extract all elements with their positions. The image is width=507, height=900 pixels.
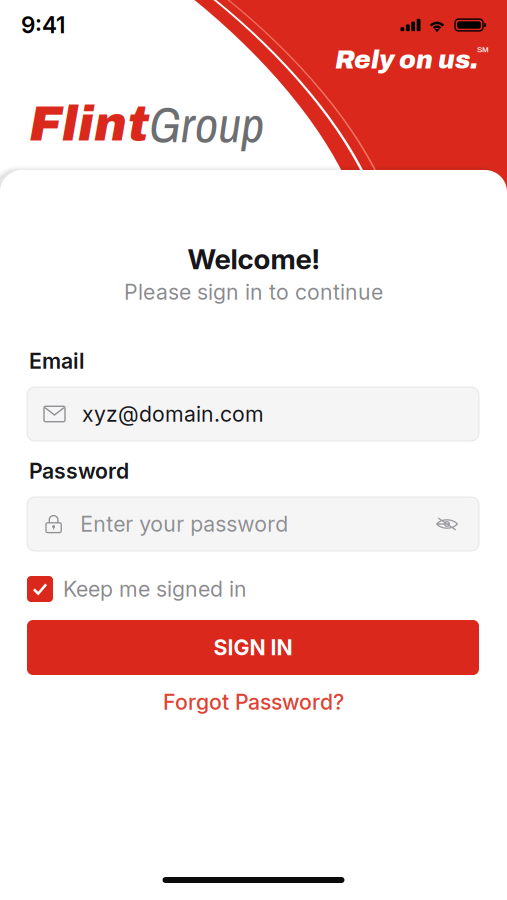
staticText: Rely on us. — [335, 46, 478, 74]
button[interactable]: Forgot Password? — [0, 690, 507, 714]
staticText: Forgot Password? — [163, 689, 344, 715]
staticText: Welcome! — [187, 242, 319, 276]
staticText: Please sign in to continue — [124, 279, 383, 305]
staticText: Group — [149, 90, 264, 158]
button[interactable]: Enter your password — [27, 497, 479, 551]
staticText: Flint — [29, 97, 149, 151]
button[interactable]: Keep me signed in — [0, 575, 507, 603]
staticText: Email — [29, 348, 85, 374]
staticText: Password — [29, 458, 129, 484]
staticText: Enter your password — [80, 511, 288, 537]
button[interactable]: SIGN IN — [27, 620, 479, 675]
staticText: 9:41 — [21, 11, 65, 39]
button[interactable]: xyz@domain.com — [27, 387, 479, 441]
staticText: SIGN IN — [213, 635, 292, 660]
staticText: SM — [477, 45, 489, 54]
staticText: Keep me signed in — [63, 576, 247, 602]
staticText: xyz@domain.com — [82, 401, 264, 427]
